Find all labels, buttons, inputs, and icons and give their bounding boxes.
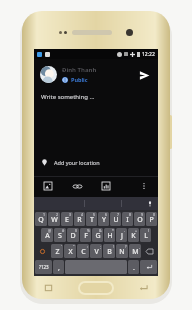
button[interactable]: P (146, 212, 157, 226)
staticText: 8 (129, 212, 132, 217)
button[interactable]: L (140, 228, 151, 242)
button[interactable]: Add your location (41, 154, 151, 170)
button[interactable]: K (128, 228, 139, 242)
button[interactable]: Add poll (100, 180, 112, 192)
staticText: # (62, 228, 65, 233)
staticText: K (131, 231, 136, 241)
staticText: ? (125, 244, 127, 249)
staticText: ( (148, 228, 150, 233)
staticText: M (132, 247, 139, 257)
button[interactable]: C (77, 244, 89, 258)
staticText: I (126, 215, 129, 225)
button[interactable]: Home (78, 281, 114, 295)
button[interactable]: More options (138, 180, 150, 192)
staticText: P (149, 215, 154, 225)
button[interactable]: , (53, 260, 64, 274)
button[interactable]: N (116, 244, 128, 258)
staticText: ; (100, 244, 101, 249)
staticText: & (99, 228, 102, 233)
staticText: $ (75, 228, 78, 233)
button[interactable]: R (74, 212, 85, 226)
staticText: Z (55, 247, 60, 257)
staticText: % (87, 228, 90, 233)
staticText: W (51, 215, 58, 225)
staticText: 6 (105, 212, 108, 217)
button[interactable]: Backspace (142, 244, 157, 258)
button[interactable]: F (80, 228, 91, 242)
staticText: X (68, 247, 73, 257)
staticText: 1 (43, 212, 46, 217)
staticText: + (135, 228, 138, 233)
staticText: 3 (69, 212, 72, 217)
button[interactable]: M (129, 244, 141, 258)
staticText: Q (38, 215, 44, 225)
button[interactable]: G (92, 228, 103, 242)
button[interactable]: B (103, 244, 115, 258)
button[interactable]: . (128, 260, 139, 274)
staticText: " (73, 244, 75, 249)
staticText: 2 (56, 212, 59, 217)
button[interactable]: Z (51, 244, 63, 258)
staticText: T (90, 215, 94, 225)
button[interactable]: J (116, 228, 127, 242)
button[interactable]: D (67, 228, 79, 242)
staticText: H (107, 231, 113, 241)
staticText: - (124, 228, 126, 233)
staticText: 9 (141, 212, 144, 217)
other: Recent apps (44, 283, 53, 292)
staticText: * (112, 228, 114, 233)
button[interactable]: Add photo (42, 180, 54, 192)
button[interactable]: X (64, 244, 76, 258)
button[interactable]: W (48, 212, 60, 226)
staticText: B (107, 247, 112, 257)
staticText: U (113, 215, 119, 225)
staticText: , (139, 244, 140, 249)
staticText: A (45, 231, 50, 241)
button[interactable]: Send (136, 67, 152, 83)
button[interactable]: T (86, 212, 97, 226)
button[interactable]: Enter (140, 260, 157, 274)
staticText: R (77, 215, 82, 225)
staticText: 0 (153, 212, 156, 217)
button[interactable]: H (104, 228, 115, 242)
button[interactable]: V (90, 244, 102, 258)
button[interactable]: I (122, 212, 133, 226)
button[interactable]: Public (62, 76, 88, 83)
staticText: , (58, 263, 60, 273)
button[interactable]: E (61, 212, 73, 226)
button[interactable]: Y (98, 212, 109, 226)
staticText: F (84, 231, 88, 241)
button[interactable]: Q (35, 212, 47, 226)
button[interactable]: U (110, 212, 121, 226)
staticText: G (95, 231, 101, 241)
staticText: @ (48, 228, 52, 233)
staticText: Public (71, 76, 88, 83)
staticText: ' (61, 244, 62, 249)
button[interactable]: O (134, 212, 145, 226)
staticText: E (65, 215, 69, 225)
staticText: D (70, 231, 76, 241)
staticText: 12:22 (142, 51, 155, 58)
staticText: Y (102, 215, 106, 225)
button[interactable]: ?123 (35, 260, 52, 274)
staticText: 7 (117, 212, 120, 217)
staticText: J (121, 231, 123, 241)
staticText: Add your location (54, 159, 100, 166)
staticText: Write something ... (41, 93, 95, 101)
staticText: Đinh Thanh (62, 66, 97, 74)
button[interactable]: S (54, 228, 66, 242)
staticText: N (119, 247, 125, 257)
staticText: . (133, 263, 135, 273)
staticText: 4 (81, 212, 84, 217)
button[interactable]: Shift (35, 244, 50, 258)
staticText: L (144, 231, 148, 241)
staticText: C (81, 247, 86, 257)
button[interactable]: Add link (71, 180, 83, 192)
other: Voice input (147, 201, 153, 207)
staticText: ?123 (39, 264, 49, 270)
staticText: ! (113, 244, 114, 249)
staticText: O (137, 215, 143, 225)
other: Back (139, 283, 148, 292)
button[interactable]: A (41, 228, 53, 242)
